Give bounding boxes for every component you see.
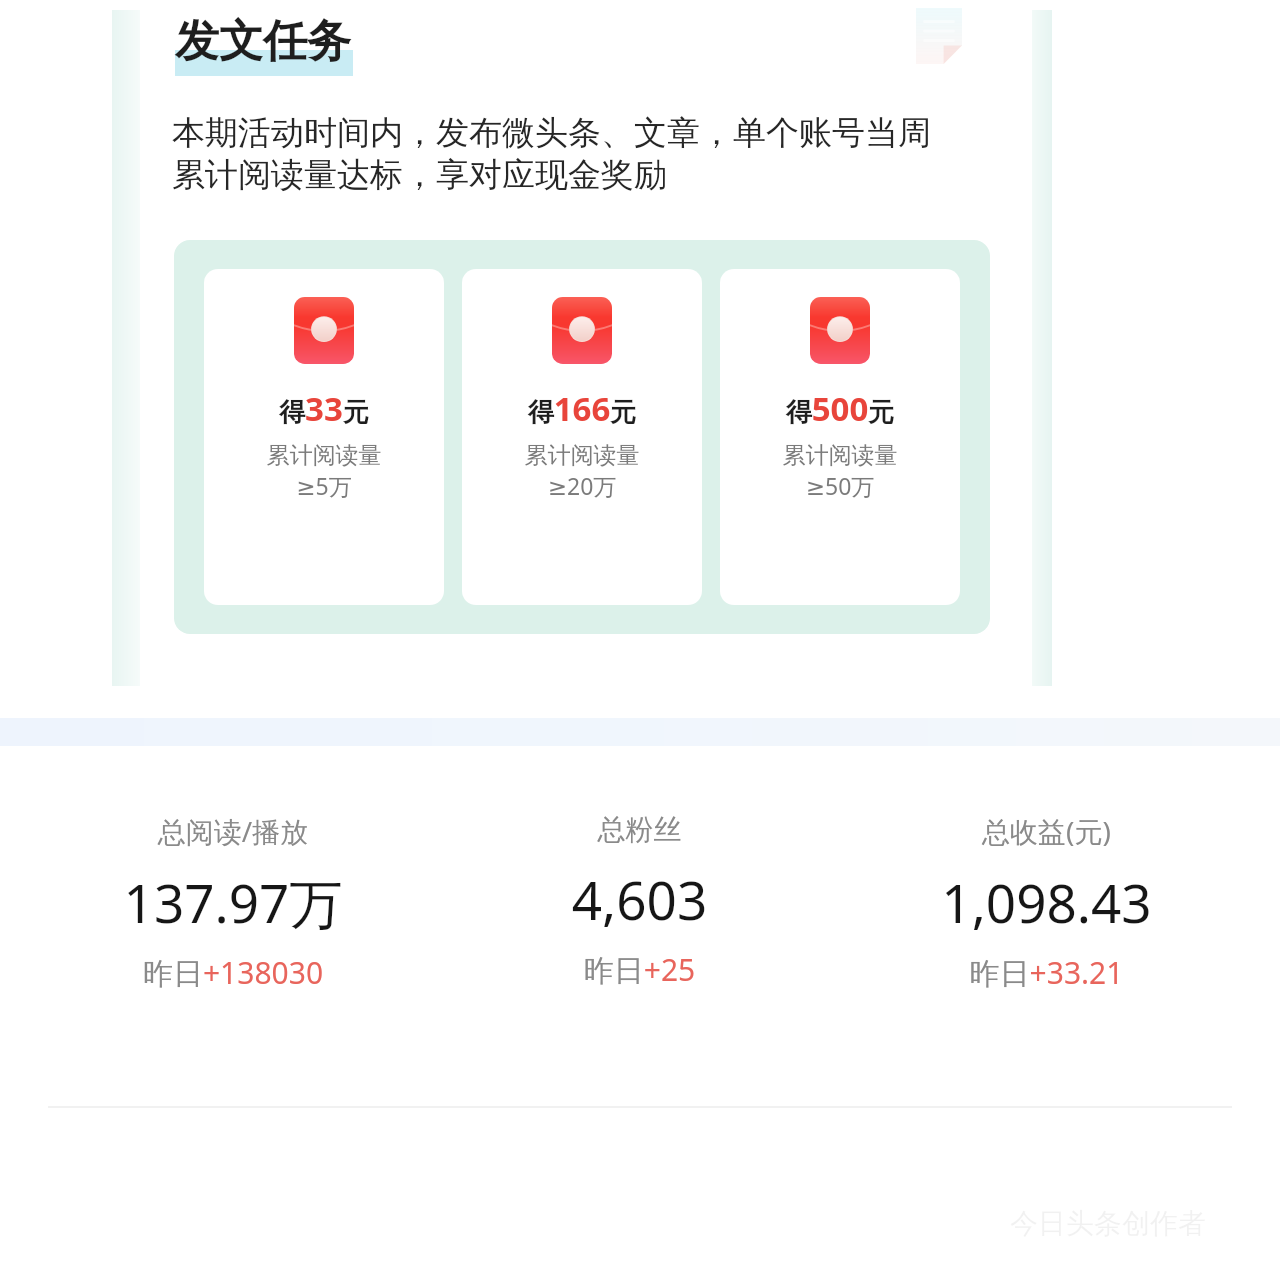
staticText: 累计阅读量 [462, 441, 702, 470]
button[interactable]: 总阅读/播放 [30, 812, 436, 993]
staticText: 本期活动时间内，发布微头条、文章，单个账号当周 [172, 112, 931, 154]
staticText: 今日头条创作者 [1010, 1206, 1206, 1241]
button[interactable]: 得500元 [720, 269, 960, 605]
staticText: ≥5万 [204, 470, 444, 501]
button[interactable]: 得166元 [462, 269, 702, 605]
staticText: 昨日+25 [436, 949, 843, 990]
staticText: 总收益(元) [843, 812, 1250, 850]
staticText: 137.97万 [30, 866, 436, 938]
other: Document [916, 8, 962, 64]
staticText: 累计阅读量 [204, 441, 444, 470]
staticText: 发文任务 [175, 14, 351, 69]
staticText: 昨日+33.21 [843, 952, 1250, 993]
staticText: 得500元 [720, 386, 960, 431]
button[interactable]: 总收益(元) [843, 812, 1250, 993]
staticText: 总粉丝 [436, 812, 843, 847]
staticText: 累计阅读量达标，享对应现金奖励 [172, 154, 667, 196]
staticText: ≥50万 [720, 470, 960, 501]
staticText: 1,098.43 [843, 866, 1250, 938]
staticText: ≥20万 [462, 470, 702, 501]
staticText: 得166元 [462, 386, 702, 431]
button[interactable]: 总粉丝 [436, 812, 843, 990]
staticText: 累计阅读量 [720, 441, 960, 470]
staticText: 总阅读/播放 [30, 812, 436, 850]
staticText: 昨日+138030 [30, 952, 436, 993]
button[interactable]: 得33元 [204, 269, 444, 605]
staticText: 4,603 [436, 863, 843, 935]
staticText: 得33元 [204, 386, 444, 431]
